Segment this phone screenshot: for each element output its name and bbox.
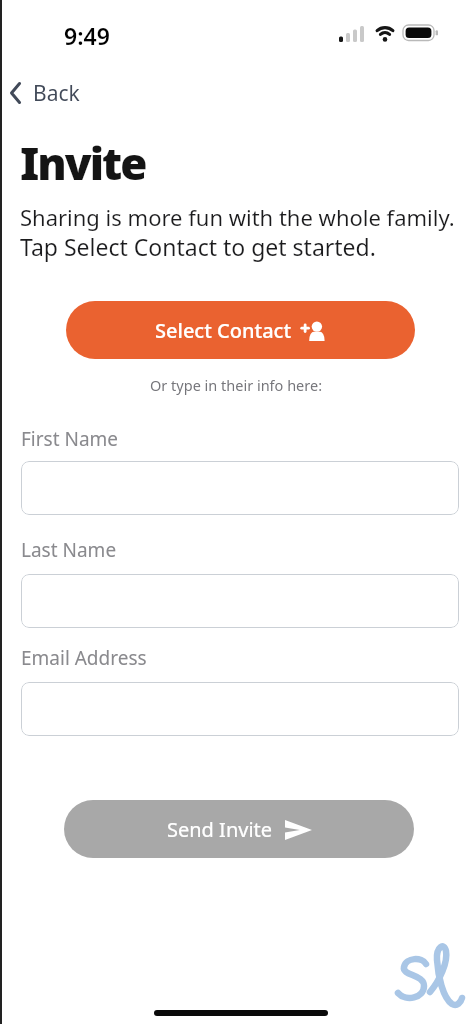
- staticText: Invite: [20, 133, 146, 193]
- button[interactable]: [21, 461, 459, 515]
- button[interactable]: [21, 574, 459, 628]
- staticText: First Name: [21, 426, 119, 452]
- staticText: 9:49: [64, 20, 110, 51]
- staticText: Tap Select Contact to get started.: [20, 231, 376, 262]
- staticText: Back: [33, 79, 80, 108]
- button[interactable]: Send Invite: [64, 800, 414, 858]
- staticText: Send Invite: [167, 816, 273, 843]
- staticText: Last Name: [21, 537, 117, 563]
- button[interactable]: Select Contact: [66, 301, 415, 359]
- staticText: Email Address: [21, 645, 147, 671]
- staticText: Sharing is more fun with the whole famil…: [20, 202, 455, 232]
- staticText: Select Contact: [155, 317, 292, 344]
- button[interactable]: Back: [8, 78, 80, 108]
- staticText: Or type in their info here:: [150, 375, 323, 395]
- button[interactable]: [21, 682, 459, 736]
